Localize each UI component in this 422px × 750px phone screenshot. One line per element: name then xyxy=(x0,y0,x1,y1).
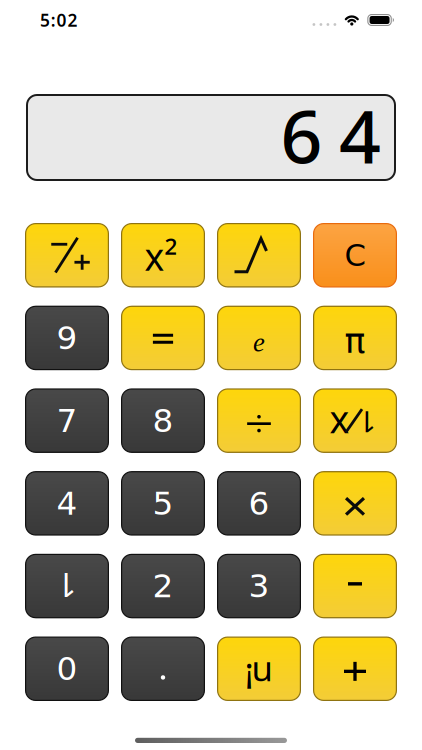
staticText: 1 xyxy=(57,564,76,608)
button[interactable]: 4 xyxy=(25,471,109,536)
button[interactable]: plus minus xyxy=(25,223,109,287)
button[interactable]: point xyxy=(121,636,205,701)
button[interactable]: natural log xyxy=(217,636,301,701)
button[interactable]: 2 xyxy=(121,554,205,618)
button[interactable]: multiply xyxy=(313,471,397,536)
staticText: 2 xyxy=(152,567,173,605)
staticText: 7 xyxy=(56,402,77,440)
button[interactable]: e xyxy=(217,306,301,370)
button[interactable]: divide xyxy=(217,388,301,453)
staticText: e xyxy=(253,328,265,357)
button[interactable]: x squared xyxy=(121,223,205,287)
button[interactable]: 6 xyxy=(217,471,301,536)
button[interactable]: plus xyxy=(313,636,397,701)
staticText: C xyxy=(344,237,365,273)
button[interactable]: 5 xyxy=(121,471,205,536)
button[interactable]: 0 xyxy=(25,636,109,701)
button[interactable]: 7 xyxy=(25,388,109,453)
button[interactable]: 1 xyxy=(25,554,109,618)
staticText: 5:02 xyxy=(40,8,77,31)
staticText: 6 xyxy=(248,484,269,522)
staticText: 1 xyxy=(359,403,376,442)
button[interactable]: pi xyxy=(313,306,397,370)
button[interactable]: equals xyxy=(121,306,205,370)
staticText: x² xyxy=(144,231,177,281)
staticText: 0 xyxy=(56,650,77,688)
button[interactable]: square root xyxy=(217,223,301,287)
button[interactable]: 9 xyxy=(25,306,109,370)
staticText: 64 xyxy=(280,86,381,184)
staticText: π xyxy=(344,321,365,362)
staticText: 4 xyxy=(56,484,77,522)
staticText: 5 xyxy=(152,484,173,522)
staticText: u xyxy=(251,645,272,691)
button[interactable]: minus xyxy=(313,554,397,618)
staticText: ¡ xyxy=(244,646,253,692)
button[interactable]: clear xyxy=(313,223,397,287)
button[interactable]: 8 xyxy=(121,388,205,453)
staticText: 8 xyxy=(152,402,173,440)
staticText: x xyxy=(329,394,349,443)
staticText: 3 xyxy=(248,567,269,605)
staticText: 9 xyxy=(56,319,77,357)
button[interactable]: 3 xyxy=(217,554,301,618)
button[interactable]: one over x xyxy=(313,388,397,453)
